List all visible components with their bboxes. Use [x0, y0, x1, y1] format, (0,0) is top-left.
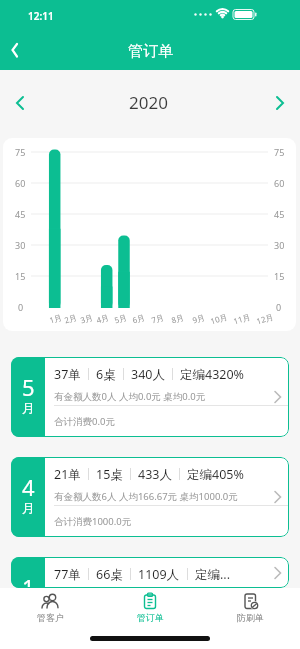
- staticText: 6月: [131, 311, 146, 325]
- staticText: 4月: [95, 311, 110, 325]
- staticText: 定编4320%: [180, 366, 244, 383]
- staticText: 10月: [209, 311, 229, 326]
- staticText: 8月: [170, 311, 185, 325]
- staticText: 1109人: [138, 566, 180, 583]
- staticText: 15桌: [96, 466, 123, 483]
- staticText: 12:11: [28, 9, 54, 23]
- staticText: 5: [22, 372, 35, 396]
- staticText: 管订单: [137, 612, 164, 623]
- staticText: 2月: [63, 311, 78, 325]
- staticText: 433人: [138, 466, 172, 483]
- staticText: 37单: [54, 366, 81, 383]
- staticText: 60: [274, 177, 285, 189]
- staticText: 4: [22, 472, 35, 496]
- staticText: 1: [22, 572, 35, 588]
- staticText: 月: [22, 500, 35, 516]
- button[interactable]: 防刷单: [200, 588, 300, 636]
- button[interactable]: 管客户: [0, 588, 100, 636]
- staticText: 45: [274, 208, 285, 220]
- staticText: 有金额人数6人 人均166.67元 桌均1000.0元: [54, 490, 238, 503]
- button[interactable]: 4: [11, 457, 289, 537]
- staticText: 管客户: [37, 612, 64, 623]
- staticText: 45: [15, 208, 26, 220]
- staticText: 1月: [48, 311, 63, 325]
- staticText: 75: [274, 146, 285, 158]
- staticText: 21单: [54, 466, 81, 483]
- staticText: 9月: [191, 311, 206, 325]
- staticText: 66桌: [96, 566, 123, 583]
- staticText: 3月: [79, 311, 94, 325]
- staticText: 77单: [54, 566, 81, 583]
- staticText: 合计消费1000.0元: [54, 515, 132, 528]
- button[interactable]: 5: [11, 357, 289, 437]
- staticText: 15: [15, 270, 26, 282]
- staticText: 6桌: [96, 366, 116, 383]
- staticText: 30: [15, 239, 26, 251]
- staticText: 340人: [131, 366, 165, 383]
- button[interactable]: 管订单: [100, 588, 200, 636]
- staticText: 30: [274, 239, 285, 251]
- staticText: 7月: [150, 311, 165, 325]
- staticText: 定编405%: [187, 466, 244, 483]
- staticText: 2020: [129, 91, 168, 114]
- staticText: 12月: [255, 311, 275, 326]
- staticText: 0: [18, 301, 24, 313]
- button[interactable]: 1: [11, 557, 289, 588]
- staticText: 定编...: [195, 566, 231, 583]
- button[interactable]: [0, 30, 44, 70]
- staticText: 11月: [232, 311, 252, 326]
- staticText: 5月: [113, 311, 128, 325]
- staticText: 月: [22, 400, 35, 416]
- staticText: 管订单: [128, 42, 173, 61]
- staticText: 0: [276, 301, 282, 313]
- button[interactable]: [6, 89, 34, 117]
- button[interactable]: [266, 89, 294, 117]
- staticText: 防刷单: [237, 612, 264, 623]
- staticText: 有金额人数0人 人均0.0元 桌均0.0元: [54, 390, 206, 403]
- staticText: 合计消费0.0元: [54, 415, 115, 428]
- staticText: 75: [15, 146, 26, 158]
- staticText: 15: [274, 270, 285, 282]
- staticText: 60: [15, 177, 26, 189]
